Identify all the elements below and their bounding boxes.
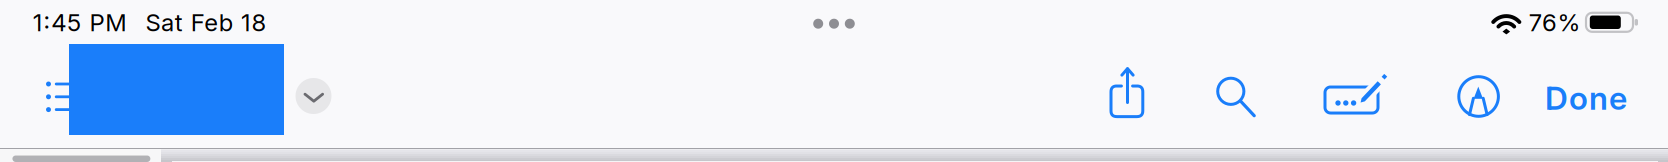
button[interactable]: Annotate — [1451, 68, 1507, 124]
button[interactable]: Share — [1098, 64, 1158, 124]
button[interactable]: Done — [1538, 70, 1634, 126]
button[interactable]: Table of contents — [36, 71, 88, 123]
button[interactable]: Markup — [1321, 62, 1395, 118]
staticText: 1:45 PM — [33, 8, 126, 37]
staticText: Done — [1545, 79, 1627, 117]
button[interactable]: Search — [1207, 69, 1265, 125]
button[interactable]: Document options — [289, 72, 337, 120]
staticText: 76% — [1529, 8, 1580, 37]
staticText: Sat Feb 18 — [145, 8, 266, 37]
